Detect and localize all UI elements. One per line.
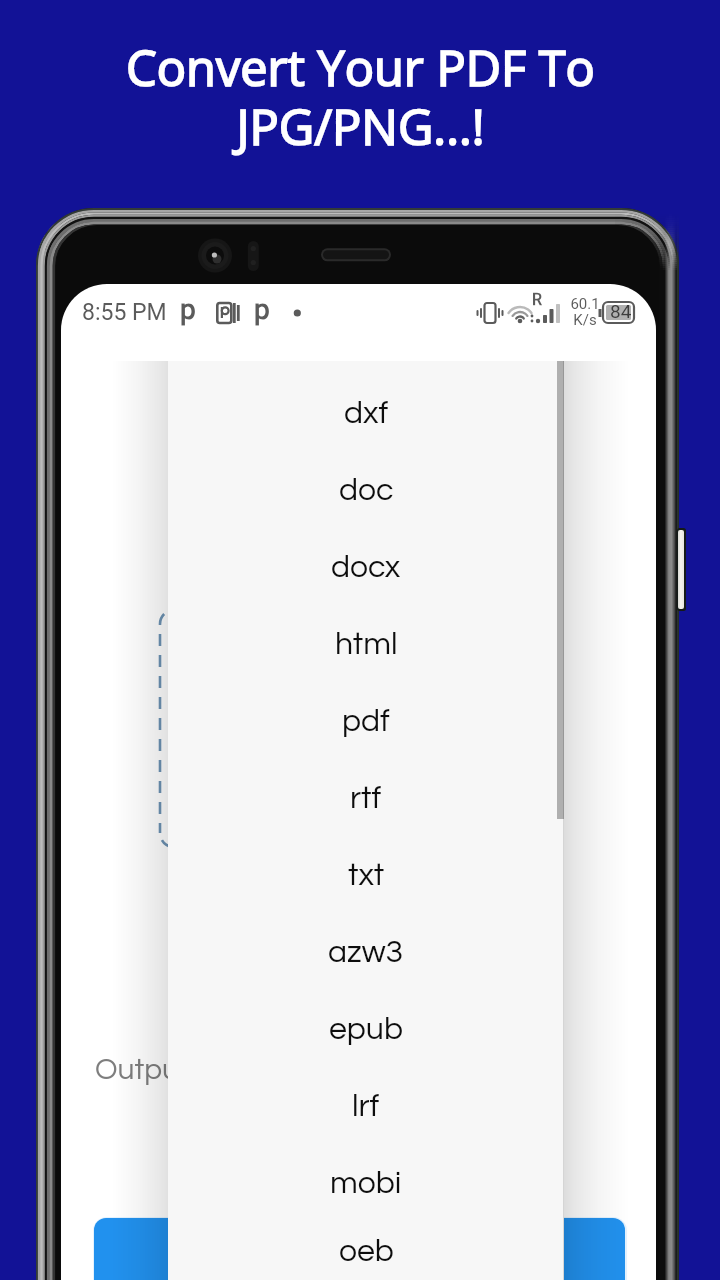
staticText: p xyxy=(180,293,196,326)
staticText: 84 xyxy=(610,300,632,322)
staticText: oeb xyxy=(339,1235,394,1268)
other: Power button xyxy=(677,528,686,611)
button[interactable]: dxf xyxy=(168,375,564,452)
button[interactable]: html xyxy=(168,606,564,683)
button[interactable]: epub xyxy=(168,991,564,1068)
staticText: azw3 xyxy=(328,936,404,969)
staticText: Output xyxy=(95,1054,189,1085)
staticText: R xyxy=(532,290,542,309)
button[interactable]: docx xyxy=(168,529,564,606)
button[interactable]: lrf xyxy=(168,1068,564,1145)
staticText: dxf xyxy=(344,397,389,430)
button[interactable] xyxy=(94,1218,625,1280)
staticText: txt xyxy=(348,859,385,892)
staticText: html xyxy=(335,628,398,661)
button[interactable]: oeb xyxy=(168,1222,564,1280)
staticText: rtf xyxy=(350,782,382,815)
staticText: lrf xyxy=(352,1090,380,1123)
staticText: 8:55 PM xyxy=(82,299,167,326)
staticText: Convert Your PDF To JPG/PNG...! xyxy=(126,34,595,159)
staticText: doc xyxy=(339,474,394,507)
staticText: mobi xyxy=(330,1167,402,1200)
staticText: 60.1 K/s xyxy=(570,295,600,329)
staticText: docx xyxy=(331,551,401,584)
button[interactable]: pdf xyxy=(168,683,564,760)
staticText: pdf xyxy=(342,705,390,738)
staticText: p xyxy=(254,293,270,326)
staticText: epub xyxy=(329,1013,404,1046)
button[interactable]: azw3 xyxy=(168,914,564,991)
button[interactable]: rtf xyxy=(168,760,564,837)
button[interactable]: txt xyxy=(168,837,564,914)
button[interactable]: mobi xyxy=(168,1145,564,1222)
button[interactable]: doc xyxy=(168,452,564,529)
